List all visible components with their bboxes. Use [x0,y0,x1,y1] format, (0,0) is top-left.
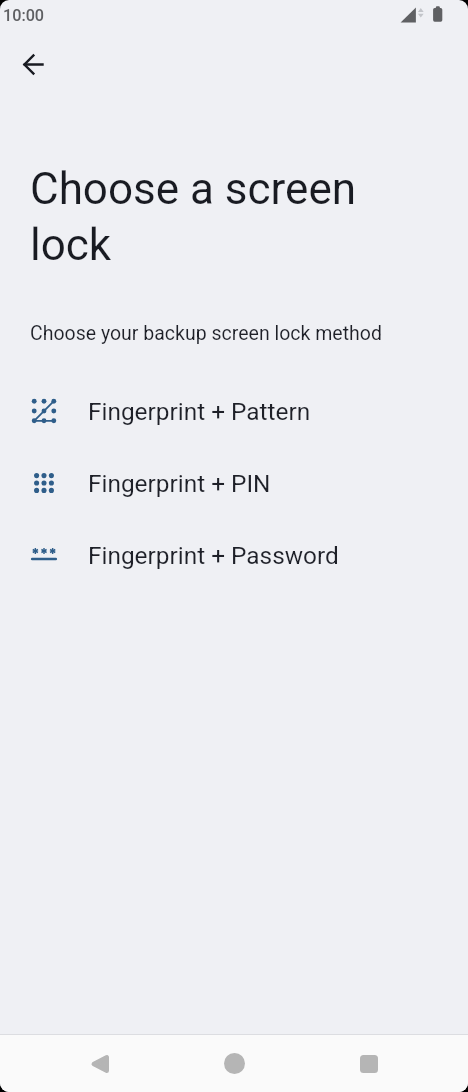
button[interactable]: Back [68,1035,131,1092]
staticText: Fingerprint + Password [88,541,339,570]
button[interactable]: Fingerprint + Password [0,519,468,591]
button[interactable]: Navigate up [10,40,58,88]
button[interactable]: Fingerprint + PIN [0,447,468,519]
staticText: Fingerprint + Pattern [88,397,311,426]
staticText: Choose your backup screen lock method [30,322,382,345]
staticText: Fingerprint + PIN [88,469,271,498]
staticText: Choose a screen lock [30,160,370,272]
button[interactable]: Overview [337,1035,400,1092]
button[interactable]: Home [202,1035,266,1092]
button[interactable]: Fingerprint + Pattern [0,375,468,447]
staticText: 10:00 [3,6,45,25]
